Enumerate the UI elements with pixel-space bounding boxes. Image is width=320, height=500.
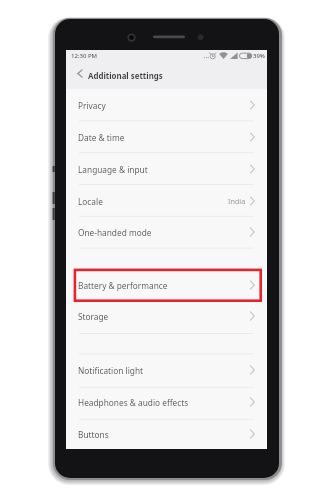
button[interactable]: Locale — [66, 185, 267, 217]
staticText: Storage — [78, 311, 109, 322]
button[interactable]: Privacy — [66, 89, 267, 121]
staticText: Notification light — [78, 365, 144, 376]
staticText: India — [228, 196, 246, 206]
button[interactable]: Battery & performance — [66, 269, 267, 301]
button[interactable]: Date & time — [66, 121, 267, 153]
staticText: Date & time — [78, 132, 125, 143]
staticText: Locale — [78, 196, 103, 207]
button[interactable]: Headphones & audio effects — [66, 386, 267, 418]
button[interactable]: Buttons — [66, 418, 267, 450]
staticText: Privacy — [78, 100, 106, 111]
staticText: Language & input — [78, 164, 148, 175]
staticText: Battery & performance — [78, 280, 168, 291]
button[interactable]: Storage — [66, 300, 267, 332]
button[interactable]: One-handed mode — [66, 216, 267, 248]
button[interactable]: Language & input — [66, 153, 267, 185]
staticText: 12:30 PM — [71, 52, 98, 60]
staticText: 39% — [253, 52, 265, 60]
staticText: One-handed mode — [78, 227, 152, 238]
button[interactable]: Back — [72, 65, 88, 82]
staticText: Headphones & audio effects — [78, 397, 189, 408]
staticText: Additional settings — [88, 71, 163, 82]
staticText: Buttons — [78, 429, 109, 440]
button[interactable]: Notification light — [66, 354, 267, 386]
